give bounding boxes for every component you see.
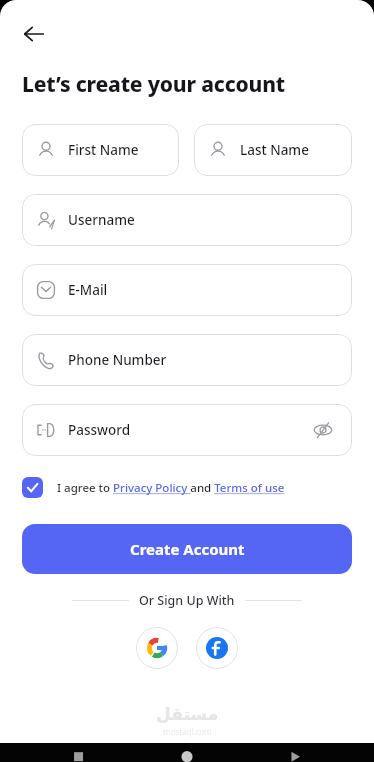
button[interactable]: Username — [22, 194, 352, 246]
staticText: Or Sign Up With — [139, 592, 235, 609]
button[interactable]: Sign up with Google — [136, 627, 178, 669]
button[interactable]: Toggle password visibility — [308, 415, 338, 445]
button[interactable]: First Name — [22, 124, 179, 176]
staticText: I agree to Privacy Policy and Terms of u… — [57, 480, 285, 496]
button[interactable]: Back — [12, 12, 56, 56]
staticText: E-Mail — [68, 281, 108, 299]
staticText: First Name — [68, 141, 139, 159]
button[interactable]: Last Name — [194, 124, 352, 176]
staticText: Create Account — [130, 539, 245, 559]
button[interactable]: Password — [22, 404, 352, 456]
staticText: Let’s create your account — [22, 70, 285, 99]
staticText: Password — [68, 421, 131, 439]
button[interactable]: E-Mail — [22, 264, 352, 316]
staticText: Last Name — [240, 141, 309, 159]
button[interactable]: Create Account — [22, 524, 352, 574]
button[interactable]: I agree to Privacy Policy and Terms of u… — [22, 477, 352, 498]
staticText: mostaql.com — [163, 726, 212, 737]
button[interactable]: Phone Number — [22, 334, 352, 386]
staticText: Username — [68, 211, 135, 229]
staticText: Phone Number — [68, 351, 167, 369]
button[interactable]: Sign up with Facebook — [196, 627, 238, 669]
staticText: مستقل — [156, 704, 219, 724]
